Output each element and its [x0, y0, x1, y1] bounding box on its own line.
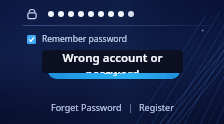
button[interactable]: Remember password — [26, 32, 129, 46]
button[interactable]: Forget Password — [48, 99, 125, 115]
staticText: Register — [139, 101, 174, 113]
staticText: Wrong account or password — [42, 50, 183, 73]
button[interactable]: Login — [48, 62, 180, 79]
staticText: Remember password — [42, 33, 128, 45]
staticText: | — [128, 101, 133, 113]
staticText: Forget Password — [51, 101, 122, 113]
staticText: Login — [103, 65, 125, 76]
button[interactable]: Register — [136, 99, 177, 115]
other: Password — [26, 8, 38, 20]
